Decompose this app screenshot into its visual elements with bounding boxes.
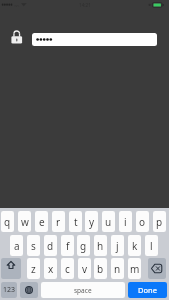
button[interactable]: p	[153, 211, 166, 232]
staticText: space	[74, 286, 92, 295]
button[interactable]: Numbers	[1, 282, 17, 298]
staticText: i	[124, 215, 127, 229]
button[interactable]: e	[35, 211, 48, 232]
button[interactable]: Done	[128, 282, 167, 298]
button[interactable]: g	[77, 235, 90, 256]
staticText: o	[139, 215, 146, 229]
button[interactable]: Delete	[148, 258, 166, 279]
button[interactable]: x	[44, 258, 57, 279]
button[interactable]: f	[61, 235, 74, 256]
button[interactable]: Password field	[32, 33, 157, 46]
button[interactable]: m	[128, 258, 141, 279]
staticText: v	[82, 262, 88, 276]
button[interactable]: h	[94, 235, 107, 256]
staticText: y	[89, 215, 95, 229]
staticText: k	[132, 239, 138, 253]
staticText: x	[48, 262, 54, 276]
staticText: p	[156, 215, 163, 229]
button[interactable]: a	[10, 235, 23, 256]
other: Locked	[5, 24, 29, 48]
staticText: a	[14, 239, 20, 253]
button[interactable]: space	[41, 282, 125, 298]
staticText: g	[80, 239, 87, 253]
staticText: 123	[3, 285, 16, 295]
staticText: f	[66, 239, 70, 253]
staticText: q	[4, 215, 11, 229]
button[interactable]: y	[85, 211, 98, 232]
button[interactable]: c	[61, 258, 74, 279]
button[interactable]: o	[136, 211, 149, 232]
button[interactable]: r	[52, 211, 65, 232]
button[interactable]: i	[119, 211, 132, 232]
staticText: t	[74, 215, 78, 229]
staticText: j	[116, 239, 119, 253]
button[interactable]: j	[111, 235, 124, 256]
staticText: c	[65, 262, 70, 276]
button[interactable]: l	[145, 235, 158, 256]
staticText: h	[97, 239, 104, 253]
button[interactable]: t	[69, 211, 82, 232]
staticText: w	[21, 215, 29, 229]
button[interactable]: q	[1, 211, 14, 232]
staticText: e	[39, 215, 45, 229]
button[interactable]: Shift	[1, 258, 21, 279]
button[interactable]: b	[94, 258, 107, 279]
staticText: Done	[138, 285, 157, 295]
button[interactable]: s	[27, 235, 40, 256]
button[interactable]: u	[102, 211, 115, 232]
staticText: b	[97, 262, 104, 276]
staticText: l	[150, 239, 153, 253]
button[interactable]: d	[44, 235, 57, 256]
staticText: n	[114, 262, 121, 276]
staticText: s	[31, 239, 36, 253]
button[interactable]: k	[128, 235, 141, 256]
staticText: d	[47, 239, 54, 253]
button[interactable]: n	[111, 258, 124, 279]
button[interactable]: Next keyboard	[20, 282, 38, 298]
staticText: r	[56, 215, 61, 229]
button[interactable]: v	[78, 258, 91, 279]
staticText: u	[105, 215, 112, 229]
staticText: z	[31, 262, 36, 276]
button[interactable]: w	[18, 211, 31, 232]
button[interactable]: z	[27, 258, 40, 279]
staticText: m	[130, 262, 140, 276]
